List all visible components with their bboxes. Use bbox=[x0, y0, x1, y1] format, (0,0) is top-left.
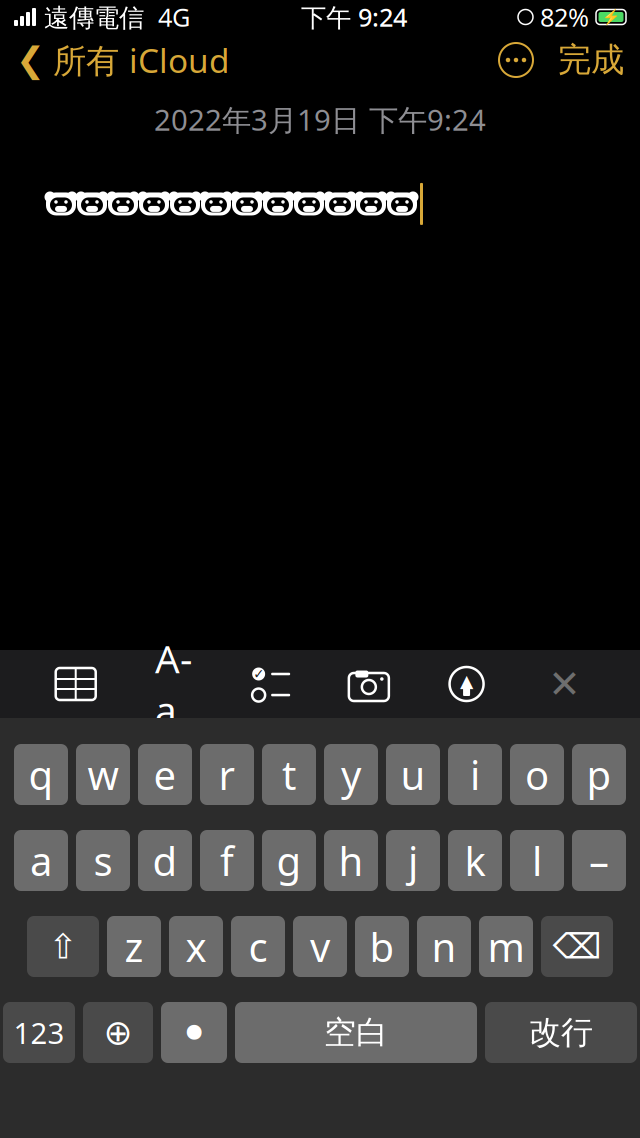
button[interactable]: a bbox=[14, 830, 68, 891]
button[interactable]: f bbox=[200, 830, 254, 891]
staticText: h bbox=[338, 834, 363, 887]
staticText: n bbox=[431, 920, 456, 973]
button[interactable]: n bbox=[417, 916, 471, 977]
staticText: r bbox=[218, 748, 235, 801]
staticText: 2022年3月19日 下午9:24 bbox=[154, 100, 486, 139]
button[interactable]: 更多 bbox=[490, 34, 542, 86]
button[interactable]: 完成 bbox=[542, 34, 640, 86]
staticText: b bbox=[369, 920, 394, 973]
button[interactable]: s bbox=[76, 830, 130, 891]
button[interactable]: r bbox=[200, 744, 254, 805]
staticText: k bbox=[464, 834, 485, 887]
staticText: l bbox=[532, 834, 542, 887]
staticText: z bbox=[124, 920, 143, 973]
button[interactable]: 表格 bbox=[54, 666, 98, 702]
staticText: ⏺ bbox=[186, 1017, 202, 1048]
button[interactable]: e bbox=[138, 744, 192, 805]
staticText: ✕ bbox=[548, 662, 580, 706]
staticText: d bbox=[152, 834, 177, 887]
button[interactable]: d bbox=[138, 830, 192, 891]
button[interactable]: c bbox=[231, 916, 285, 977]
staticText: m bbox=[487, 920, 524, 973]
staticText: – bbox=[589, 834, 609, 887]
staticText: 所有 iCloud bbox=[53, 38, 230, 82]
staticText: c bbox=[248, 920, 267, 973]
button[interactable]: ⏺ bbox=[161, 1002, 227, 1063]
button[interactable]: 123 bbox=[3, 1002, 75, 1063]
staticText: u bbox=[400, 748, 425, 801]
button[interactable]: p bbox=[572, 744, 626, 805]
button[interactable]: – bbox=[572, 830, 626, 891]
staticText: 遠傳電信 4G bbox=[36, 0, 190, 34]
staticText: e bbox=[153, 748, 176, 801]
staticText: ✓ bbox=[253, 666, 264, 681]
staticText: 改行 bbox=[529, 1013, 593, 1052]
staticText: f bbox=[220, 834, 234, 887]
staticText: y bbox=[341, 748, 361, 801]
button[interactable]: y bbox=[324, 744, 378, 805]
staticText: p bbox=[586, 748, 611, 801]
staticText: ⊕ bbox=[103, 1013, 132, 1052]
button[interactable]: m bbox=[479, 916, 533, 977]
button[interactable]: ❮ bbox=[0, 34, 246, 86]
staticText: ▲ bbox=[460, 671, 473, 691]
button[interactable]: t bbox=[262, 744, 316, 805]
button[interactable]: 相機 bbox=[347, 666, 391, 702]
button[interactable]: 改行 bbox=[485, 1002, 637, 1063]
button[interactable]: j bbox=[386, 830, 440, 891]
staticText: a bbox=[30, 834, 52, 887]
button[interactable]: k bbox=[448, 830, 502, 891]
staticText: s bbox=[93, 834, 112, 887]
staticText: v bbox=[310, 920, 330, 973]
staticText: q bbox=[28, 748, 53, 801]
button[interactable]: z bbox=[107, 916, 161, 977]
staticText: x bbox=[185, 920, 206, 973]
staticText: 完成 bbox=[558, 39, 624, 80]
staticText: 下午 9:24 bbox=[301, 0, 407, 34]
button[interactable]: 檢查表 bbox=[249, 666, 293, 702]
staticText: ⌫ bbox=[552, 927, 601, 966]
button[interactable]: x bbox=[169, 916, 223, 977]
staticText: j bbox=[408, 834, 418, 887]
staticText: 82% bbox=[533, 0, 596, 34]
staticText: 123 bbox=[13, 1013, 64, 1052]
button[interactable]: i bbox=[448, 744, 502, 805]
staticText: Aa bbox=[155, 633, 192, 735]
staticText: ❮ bbox=[16, 40, 45, 80]
button[interactable]: ⌫ bbox=[541, 916, 613, 977]
button[interactable]: ⇧ bbox=[27, 916, 99, 977]
button[interactable]: ⊕ bbox=[83, 1002, 153, 1063]
staticText: ⇧ bbox=[48, 927, 77, 966]
button[interactable]: b bbox=[355, 916, 409, 977]
staticText: w bbox=[87, 748, 118, 801]
staticText: g bbox=[276, 834, 301, 887]
button[interactable]: 格式 bbox=[151, 666, 195, 702]
button[interactable]: q bbox=[14, 744, 68, 805]
button[interactable]: 關閉 bbox=[542, 666, 586, 702]
button[interactable]: o bbox=[510, 744, 564, 805]
button[interactable]: 空白 bbox=[235, 1002, 477, 1063]
staticText: ⚡ bbox=[602, 9, 620, 25]
staticText: t bbox=[282, 748, 296, 801]
button[interactable]: 標示 bbox=[445, 666, 489, 702]
staticText: 空白 bbox=[324, 1013, 388, 1052]
button[interactable]: h bbox=[324, 830, 378, 891]
staticText: o bbox=[525, 748, 549, 801]
button[interactable]: u bbox=[386, 744, 440, 805]
button[interactable]: l bbox=[510, 830, 564, 891]
button[interactable]: v bbox=[293, 916, 347, 977]
staticText: i bbox=[470, 748, 480, 801]
button[interactable]: g bbox=[262, 830, 316, 891]
button[interactable]: w bbox=[76, 744, 130, 805]
